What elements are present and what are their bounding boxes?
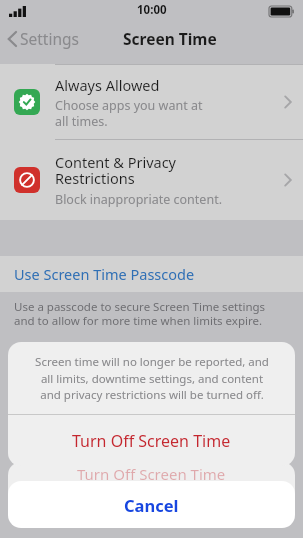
staticText: Choose apps you want at all times. <box>55 97 203 129</box>
staticText: Cancel <box>124 494 179 516</box>
staticText: Screen time will no longer be reported, … <box>35 354 269 402</box>
staticText: Screen Time <box>123 28 217 49</box>
staticText: Turn Off Screen Time <box>77 464 226 484</box>
button[interactable]: Content & Privacy Restrictions <box>0 140 303 220</box>
button[interactable]: Cancel <box>8 481 295 528</box>
staticText: Turn Off Screen Time <box>72 430 231 452</box>
staticText: Settings <box>20 28 79 49</box>
staticText: Content & Privacy Restrictions <box>55 152 177 189</box>
staticText: Block inappropriate content. <box>55 191 222 208</box>
button[interactable]: Turn Off Screen Time <box>8 415 295 466</box>
staticText: Use Screen Time Passcode <box>14 264 195 284</box>
button[interactable]: Use Screen Time Passcode <box>0 256 303 292</box>
button[interactable]: Always Allowed <box>0 65 303 139</box>
button[interactable]: Settings <box>7 28 79 49</box>
staticText: Use a passcode to secure Screen Time set… <box>14 299 266 328</box>
staticText: 10:00 <box>137 2 167 18</box>
staticText: Always Allowed <box>55 75 160 95</box>
